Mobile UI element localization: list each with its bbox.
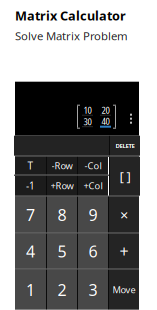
staticText: Matrix Calculator [15, 7, 126, 24]
staticText: -Col [84, 159, 101, 172]
staticText: 40 [101, 115, 109, 127]
button[interactable]: [ ] [110, 157, 140, 196]
staticText: 7 [26, 204, 35, 226]
staticText: +Row [50, 179, 73, 192]
staticText: -Row [51, 159, 72, 172]
staticText: T [27, 159, 33, 172]
button[interactable]: -Row [47, 157, 77, 175]
button[interactable]: T [15, 157, 46, 175]
button[interactable]: 7 [15, 197, 46, 233]
staticText: 5 [57, 240, 66, 262]
button[interactable]: 6 [78, 234, 108, 269]
button[interactable]: -1 [15, 176, 46, 196]
staticText: 9 [88, 204, 97, 226]
staticText: 10 [83, 104, 91, 116]
staticText: 3 [88, 279, 97, 301]
staticText: 1 [26, 279, 35, 301]
staticText: 20 [101, 104, 109, 116]
button[interactable]: 2 [47, 270, 77, 310]
staticText: 8 [57, 204, 66, 226]
button[interactable]: 8 [47, 197, 77, 233]
button[interactable]: +Col [78, 176, 108, 196]
staticText: 6 [88, 240, 97, 262]
button[interactable]: + [109, 234, 139, 269]
staticText: + [119, 240, 128, 262]
staticText: Solve Matrix Problem [15, 28, 128, 44]
staticText: × [120, 205, 128, 225]
button[interactable]: -Col [78, 157, 108, 175]
staticText: 2 [57, 279, 66, 301]
button[interactable]: 3 [78, 270, 108, 310]
button[interactable]: 1 [15, 270, 46, 310]
staticText: 4 [26, 240, 35, 262]
staticText: DELETE [115, 142, 134, 150]
staticText: Move [112, 283, 135, 296]
button[interactable]: DELETE [110, 136, 140, 156]
staticText: +Col [83, 179, 102, 192]
button[interactable]: Move [109, 270, 139, 310]
staticText: 30 [83, 115, 91, 128]
button[interactable]: 5 [47, 234, 77, 269]
staticText: [ ] [119, 167, 130, 185]
button[interactable]: 9 [78, 197, 108, 233]
button[interactable]: × [109, 197, 139, 233]
staticText: -1 [26, 179, 35, 192]
button[interactable]: 4 [15, 234, 46, 269]
button[interactable]: +Row [47, 176, 77, 196]
